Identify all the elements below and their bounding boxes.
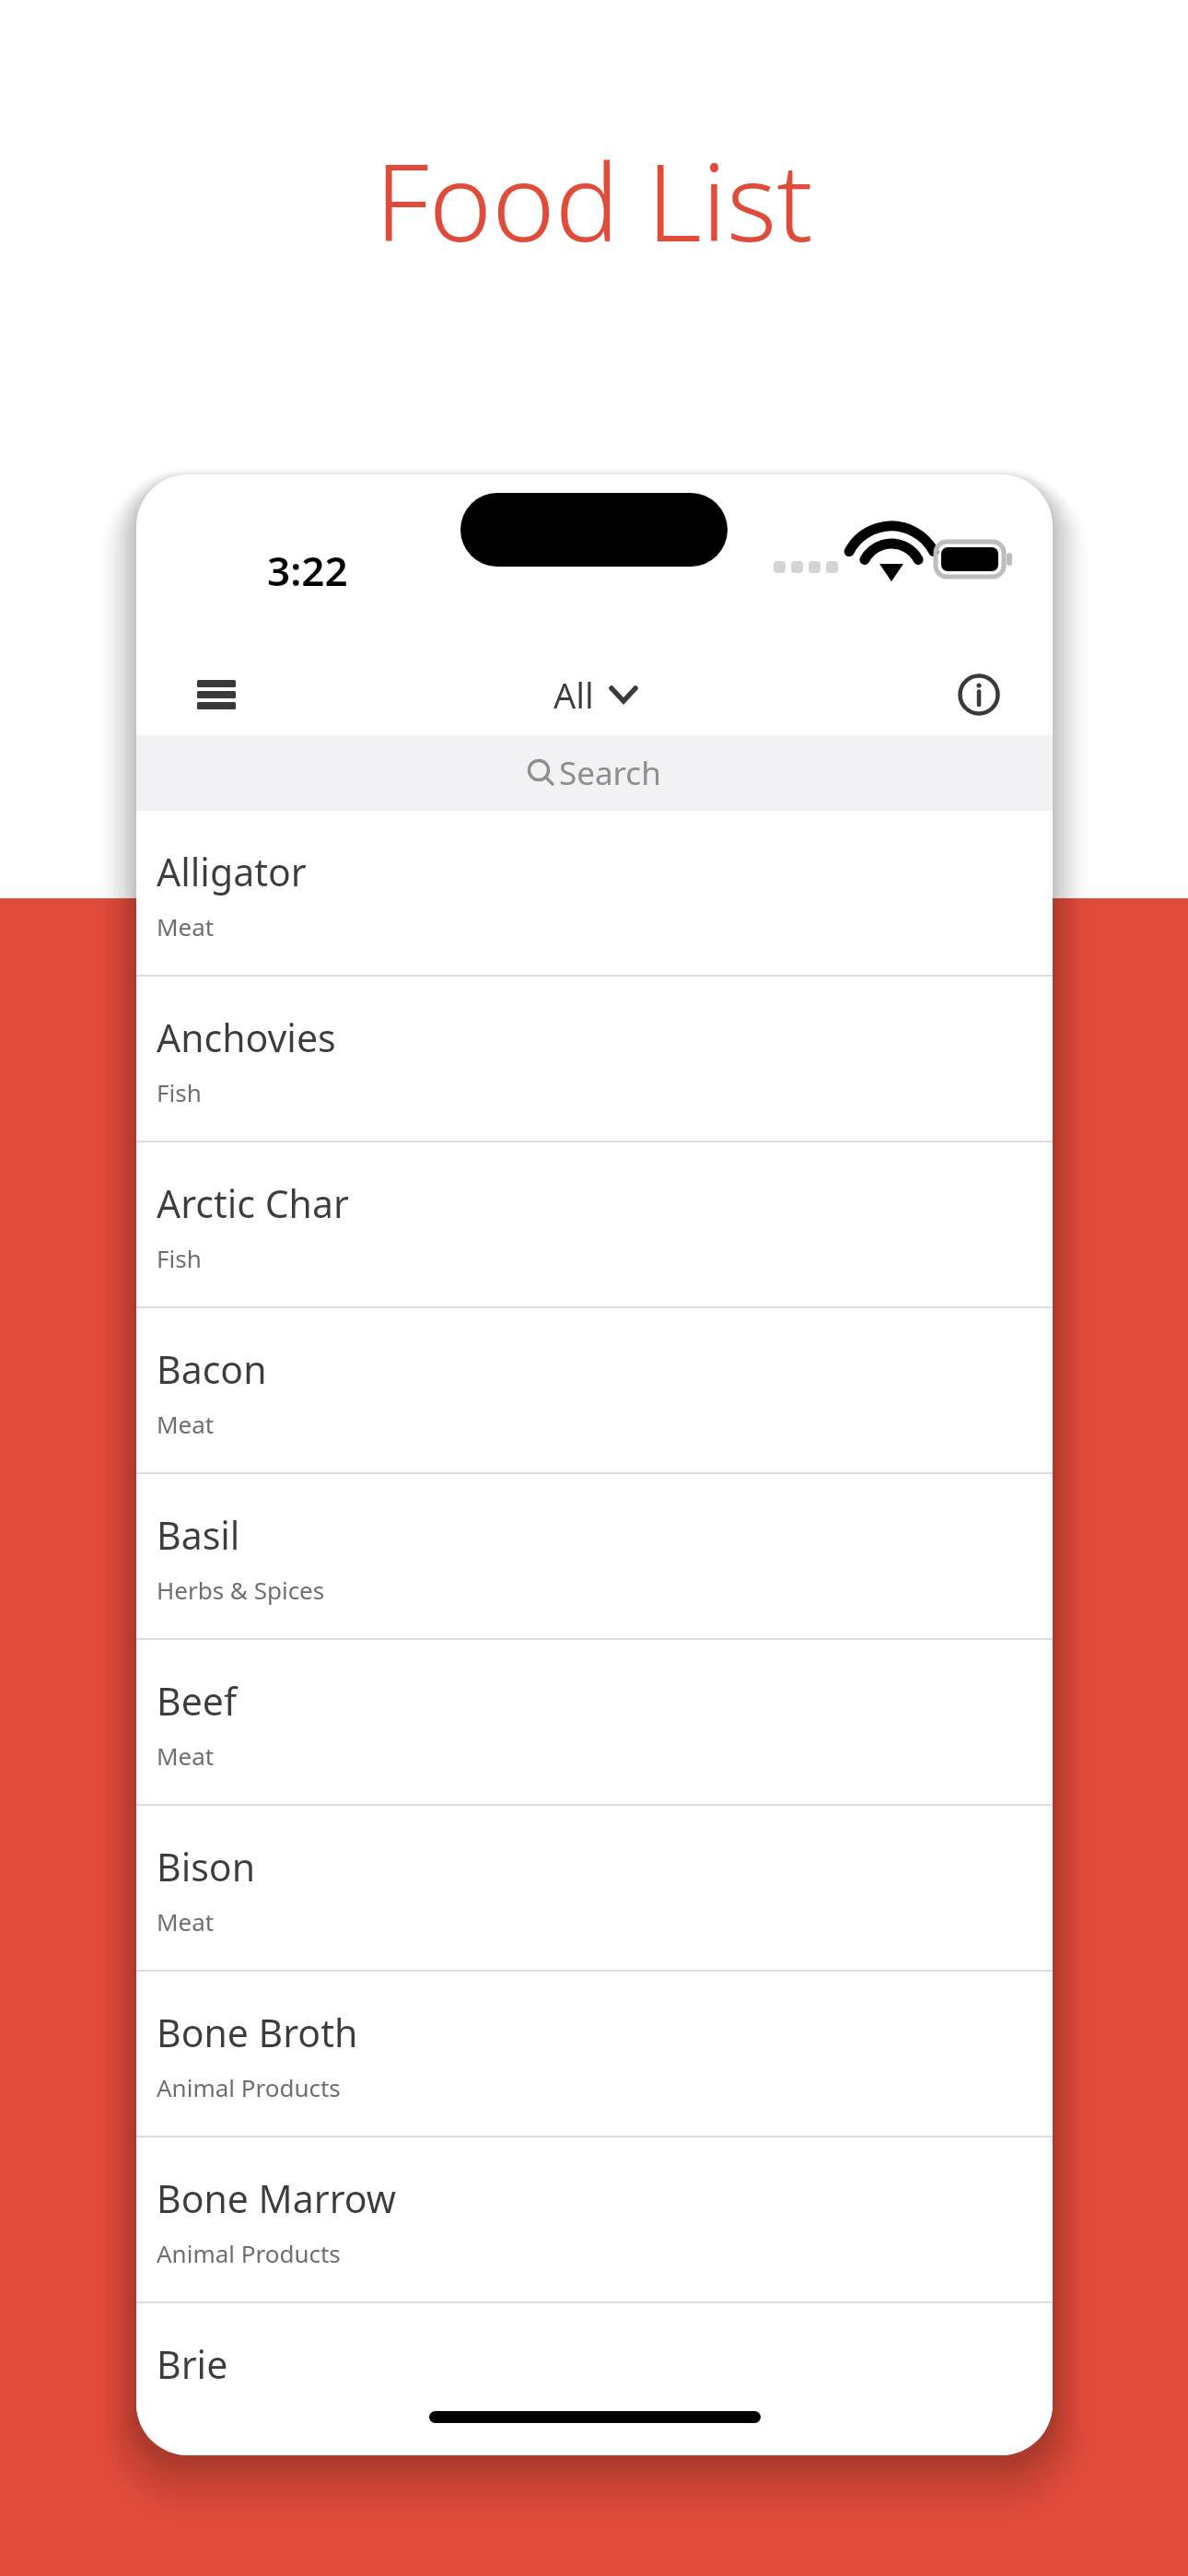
staticText: Meat	[157, 1905, 215, 1938]
button[interactable]: Information	[949, 665, 1008, 724]
staticText: Animal Products	[157, 2237, 341, 2269]
button[interactable]: Bacon	[136, 1308, 1053, 1472]
button[interactable]: Basil	[136, 1474, 1053, 1638]
button[interactable]: Bone Marrow	[136, 2137, 1053, 2301]
button[interactable]: Brie	[136, 2303, 1053, 2389]
staticText: Alligator	[157, 846, 307, 897]
button[interactable]: Anchovies	[136, 977, 1053, 1141]
staticText: Meat	[157, 1739, 215, 1772]
staticText: Bacon	[157, 1343, 267, 1395]
staticText: Brie	[157, 2338, 228, 2389]
staticText: Meat	[157, 1408, 215, 1440]
staticText: Fish	[157, 1242, 202, 1274]
staticText: Fish	[157, 1076, 202, 1108]
staticText: 3:22	[267, 543, 348, 598]
staticText: Bone Broth	[157, 2007, 358, 2058]
staticText: Anchovies	[157, 1012, 336, 1063]
staticText: Bone Marrow	[157, 2172, 397, 2224]
button[interactable]: Arctic Char	[136, 1142, 1053, 1306]
staticText: Bison	[157, 1841, 256, 1892]
button[interactable]: Menu	[187, 665, 246, 724]
staticText: Basil	[157, 1509, 240, 1561]
button[interactable]: Bone Broth	[136, 1972, 1053, 2136]
button[interactable]: Search	[136, 735, 1053, 811]
staticText: Food List	[375, 127, 813, 273]
staticText: Animal Products	[157, 2071, 341, 2103]
staticText: Meat	[157, 910, 215, 943]
button[interactable]: Alligator	[136, 811, 1053, 975]
staticText: Beef	[157, 1675, 238, 1727]
staticText: All	[553, 671, 594, 719]
button[interactable]: Bison	[136, 1806, 1053, 1970]
button[interactable]: Beef	[136, 1640, 1053, 1804]
staticText: Search	[559, 751, 661, 795]
staticText: Arctic Char	[157, 1177, 349, 1229]
button[interactable]: All	[541, 665, 649, 724]
staticText: Herbs & Spices	[157, 1574, 325, 1606]
